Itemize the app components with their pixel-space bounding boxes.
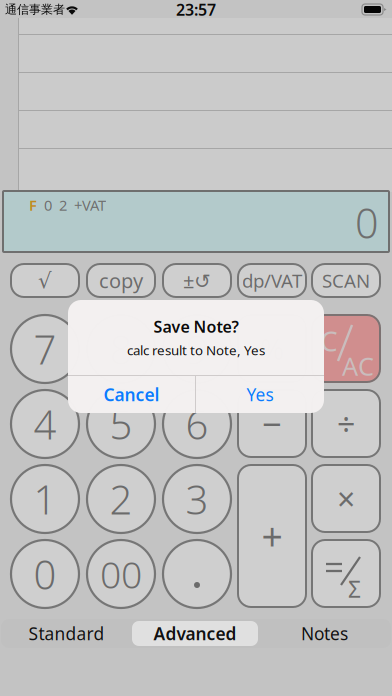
staticText: AC — [342, 349, 374, 383]
staticText: 7 — [33, 322, 56, 375]
button[interactable]: 00 — [87, 540, 155, 608]
button[interactable]: Standard — [1, 619, 132, 648]
button[interactable]: Yes — [196, 376, 324, 413]
staticText: copy — [99, 267, 143, 294]
staticText: 2 — [59, 195, 67, 215]
button[interactable]: 8 — [87, 315, 155, 383]
staticText: 23:57 — [176, 0, 216, 20]
staticText: Notes — [301, 622, 348, 645]
staticText: 00 — [100, 549, 142, 599]
staticText: 3 — [185, 472, 208, 525]
staticText: 0 — [355, 195, 379, 250]
button[interactable]: copy — [87, 264, 155, 297]
staticText: 0 — [44, 195, 52, 215]
button[interactable]: Decimal point — [163, 540, 231, 608]
staticText: Standard — [28, 622, 104, 645]
staticText: × — [337, 477, 355, 520]
button[interactable]: ÷ — [312, 390, 380, 457]
staticText: 1 — [33, 472, 56, 525]
button[interactable]: 0 — [11, 540, 79, 608]
button[interactable]: % — [238, 315, 306, 382]
staticText: 通信事業者 — [5, 2, 65, 17]
staticText: 0 — [33, 547, 56, 600]
staticText: dp/VAT — [242, 268, 302, 293]
staticText: − — [262, 400, 282, 446]
staticText: + — [261, 511, 282, 561]
button[interactable]: 2 — [87, 465, 155, 533]
staticText: Σ — [348, 574, 361, 604]
staticText: 5 — [109, 397, 132, 450]
button[interactable]: ±↺ — [163, 264, 231, 297]
button[interactable]: 3 — [163, 465, 231, 533]
staticText: 9 — [185, 322, 208, 375]
staticText: C — [320, 322, 338, 359]
staticText: +VAT — [74, 195, 106, 215]
button[interactable]: Advanced — [132, 621, 258, 646]
staticText: Yes — [246, 383, 273, 406]
button[interactable]: 6 — [163, 390, 231, 458]
button[interactable]: Notes — [258, 619, 391, 648]
staticText: 4 — [33, 397, 56, 450]
button[interactable]: 5 — [87, 390, 155, 458]
button[interactable]: + — [238, 465, 306, 607]
button[interactable]: √ — [11, 264, 79, 297]
button[interactable]: SCAN — [312, 264, 380, 297]
staticText: 8 — [109, 322, 132, 375]
button[interactable]: 9 — [163, 315, 231, 383]
staticText: F — [29, 195, 37, 215]
button[interactable]: 4 — [11, 390, 79, 458]
staticText: Cancel — [103, 383, 159, 406]
button[interactable]: Σ — [312, 540, 380, 607]
staticText: % — [260, 329, 284, 368]
button[interactable]: dp/VAT — [238, 264, 306, 297]
staticText: Save Note? — [153, 316, 238, 337]
staticText: SCAN — [322, 268, 370, 293]
staticText: 6 — [185, 397, 208, 450]
button[interactable]: 7 — [11, 315, 79, 383]
button[interactable]: × — [312, 465, 380, 532]
staticText: calc result to Note, Yes — [127, 341, 265, 359]
staticText: Advanced — [153, 622, 236, 645]
button[interactable]: 1 — [11, 465, 79, 533]
button[interactable]: C — [312, 315, 380, 382]
staticText: √ — [38, 268, 52, 293]
staticText: 2 — [109, 472, 132, 525]
button[interactable]: − — [238, 390, 306, 457]
staticText: ±↺ — [183, 267, 211, 294]
staticText: ÷ — [337, 402, 355, 445]
button[interactable]: Cancel — [68, 376, 195, 413]
